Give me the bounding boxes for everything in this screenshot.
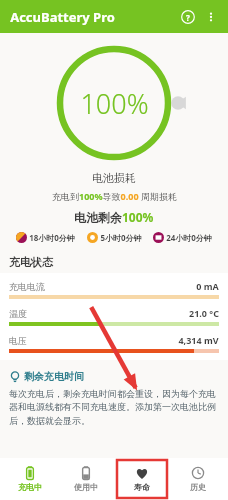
staticText: 每次充电后，剩余充电时间都会重设，因为每个充电器和电源线都有不同充电速度。添加第… (9, 388, 219, 427)
staticText: 21.0 °C (189, 307, 219, 319)
button[interactable]: More options (200, 6, 222, 28)
button[interactable]: 历史 (172, 458, 224, 500)
staticText: 100% (80, 85, 149, 122)
button[interactable]: 充电中 (4, 458, 56, 500)
staticText: 0 mA (196, 280, 219, 292)
button[interactable]: 温度 (9, 307, 219, 326)
staticText: 24小时0分钟 (166, 232, 212, 243)
staticText: 充电电流 (9, 281, 45, 292)
staticText: 历史 (190, 482, 206, 492)
button[interactable]: 寿命 (116, 458, 168, 500)
button[interactable]: 充电电流 (9, 280, 219, 299)
staticText: 充电中 (18, 482, 42, 492)
button[interactable]: Help (176, 5, 200, 29)
staticText: 使用中 (74, 482, 98, 492)
staticText: 18小时0分钟 (29, 232, 75, 243)
staticText: 电池剩余100% (74, 209, 154, 225)
staticText: 5小时0分钟 (100, 232, 142, 243)
staticText: 温度 (9, 308, 27, 319)
button[interactable]: 使用中 (60, 458, 112, 500)
staticText: 4,314 mV (178, 334, 219, 346)
staticText: 寿命 (134, 482, 150, 492)
staticText: 剩余充电时间 (24, 370, 84, 383)
staticText: 充电状态 (9, 255, 53, 269)
staticText: 充电到100%导致0.00 周期损耗 (52, 190, 177, 202)
staticText: AccuBattery Pro (10, 8, 115, 26)
button[interactable]: 电压 (9, 334, 219, 353)
staticText: 电压 (9, 335, 27, 346)
staticText: ? (186, 12, 190, 23)
staticText: 电池损耗 (92, 171, 136, 185)
